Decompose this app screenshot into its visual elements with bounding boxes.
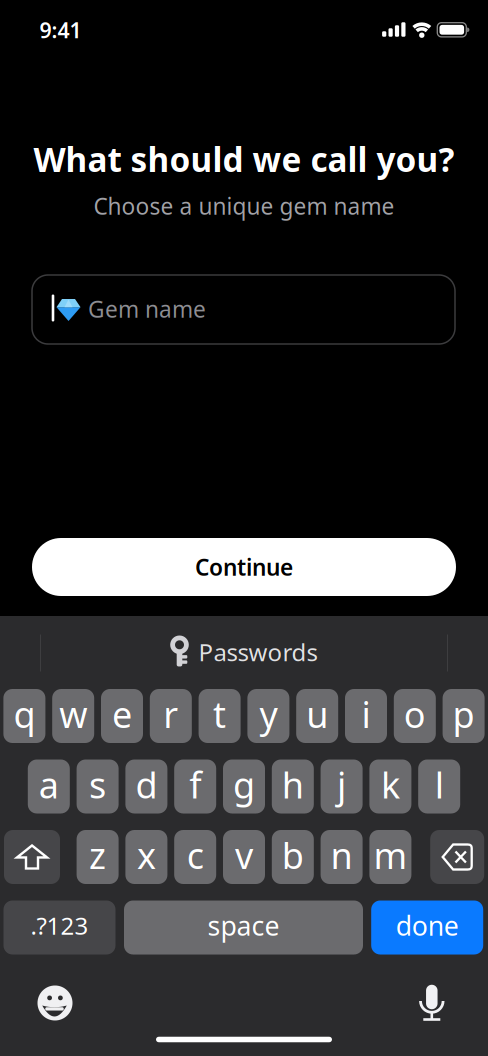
staticText: r [163,690,178,738]
staticText: w [59,690,87,738]
staticText: a [39,761,59,808]
button[interactable]: b [272,830,314,884]
button[interactable]: v [223,830,265,884]
staticText: y [259,690,277,738]
staticText: p [453,690,475,738]
button[interactable]: f [174,759,216,813]
staticText: u [306,690,328,738]
staticText: What should we call you? [33,137,454,181]
staticText: s [89,761,106,808]
staticText: o [404,690,426,738]
button[interactable]: n [321,830,363,884]
button[interactable]: w [52,689,94,743]
staticText: Passwords [198,636,317,668]
button[interactable]: .?123 [3,900,115,954]
staticText: e [112,690,132,738]
button[interactable]: Shift [4,830,60,884]
button[interactable]: x [125,830,167,884]
button[interactable]: d [125,759,167,813]
staticText: c [187,831,204,879]
staticText: done [396,908,459,943]
button[interactable]: h [272,759,314,813]
button[interactable]: Continue [32,538,456,596]
staticText: Choose a unique gem name [93,191,394,221]
staticText: t [213,690,226,738]
button[interactable]: u [296,689,338,743]
staticText: i [361,690,370,738]
staticText: d [135,761,157,808]
staticText: .?123 [30,910,88,941]
button[interactable]: s [77,759,119,813]
staticText: k [381,761,400,808]
button[interactable]: Passwords [170,636,317,668]
staticText: x [137,831,156,879]
button[interactable]: r [150,689,192,743]
button[interactable]: q [3,689,45,743]
button[interactable]: i [345,689,387,743]
staticText: l [435,761,444,808]
button[interactable]: Emoji [37,985,72,1020]
button[interactable]: m [369,830,411,884]
staticText: f [189,761,201,808]
button[interactable]: g [223,759,265,813]
button[interactable]: space [124,900,363,954]
staticText: n [331,831,353,879]
button[interactable]: j [321,759,363,813]
staticText: Gem name [88,294,206,324]
button[interactable]: done [371,900,483,954]
staticText: h [282,761,304,808]
staticText: q [13,690,35,738]
button[interactable]: Delete [430,830,484,884]
staticText: Continue [195,552,293,582]
staticText: g [233,761,255,808]
staticText: j [337,761,346,808]
staticText: b [282,831,304,879]
button[interactable]: o [394,689,436,743]
staticText: 9:41 [39,16,81,44]
staticText: m [373,831,407,879]
button[interactable]: l [418,759,460,813]
button[interactable]: a [28,759,70,813]
button[interactable]: z [77,830,119,884]
staticText: z [89,831,106,879]
staticText: v [235,831,253,879]
button[interactable]: Dictate [420,984,444,1021]
button[interactable]: Gem name [32,275,455,344]
staticText: space [207,908,279,943]
button[interactable]: e [101,689,143,743]
button[interactable]: k [369,759,411,813]
button[interactable]: t [199,689,241,743]
button[interactable]: c [174,830,216,884]
button[interactable]: y [247,689,289,743]
button[interactable]: p [443,689,485,743]
